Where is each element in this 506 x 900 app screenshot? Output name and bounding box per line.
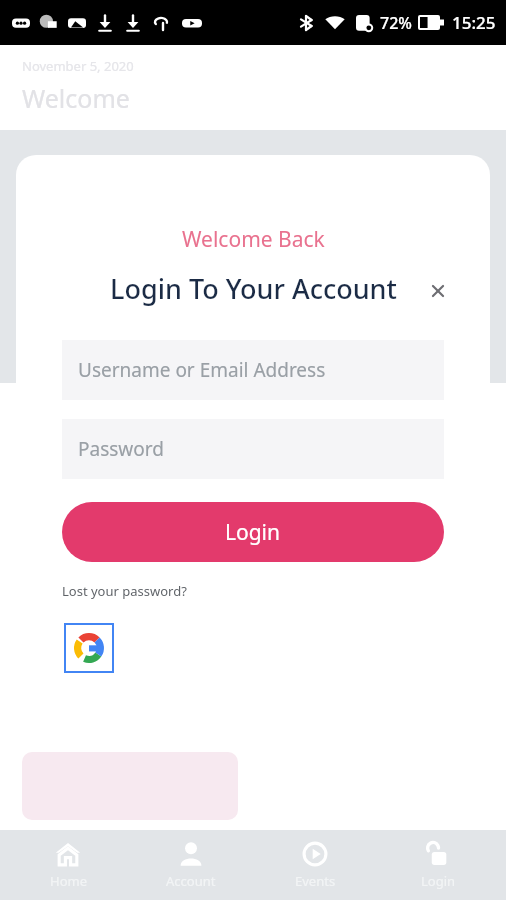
staticText: November 5, 2020	[22, 57, 134, 75]
button[interactable]: Close	[416, 269, 460, 313]
staticText: Login	[421, 872, 456, 890]
button[interactable]: Lost your password?	[62, 582, 187, 600]
button[interactable]: Username or Email Address	[62, 340, 444, 400]
staticText: Username or Email Address	[78, 357, 326, 383]
staticText: Lost your password?	[62, 582, 187, 600]
staticText: Login	[225, 518, 281, 547]
staticText: Welcome Back	[182, 225, 325, 254]
staticText: Events	[295, 872, 336, 890]
button[interactable]: Password	[62, 419, 444, 479]
staticText: 15:25	[452, 11, 496, 34]
button[interactable]: Login	[383, 833, 493, 898]
staticText: Password	[78, 436, 164, 462]
button[interactable]: Events	[260, 833, 370, 898]
button[interactable]: Account	[136, 833, 246, 898]
staticText: Account	[166, 872, 216, 890]
button[interactable]: Login	[62, 502, 444, 562]
staticText: Home	[50, 872, 87, 890]
staticText: Welcome	[22, 81, 130, 115]
button[interactable]: Sign in with Google	[64, 623, 114, 673]
staticText: Login To Your Account	[110, 270, 397, 307]
button[interactable]: Home	[13, 833, 123, 898]
staticText: 72%	[380, 12, 412, 34]
